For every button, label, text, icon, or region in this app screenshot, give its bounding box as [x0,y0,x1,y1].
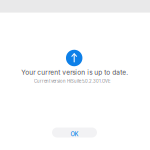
button[interactable]: OK [52,127,97,137]
staticText: Current version HiSuite 5.0.2.301.OVE [34,79,111,84]
staticText: Your current version is up to date. [21,68,128,76]
staticText: OK [70,131,78,137]
